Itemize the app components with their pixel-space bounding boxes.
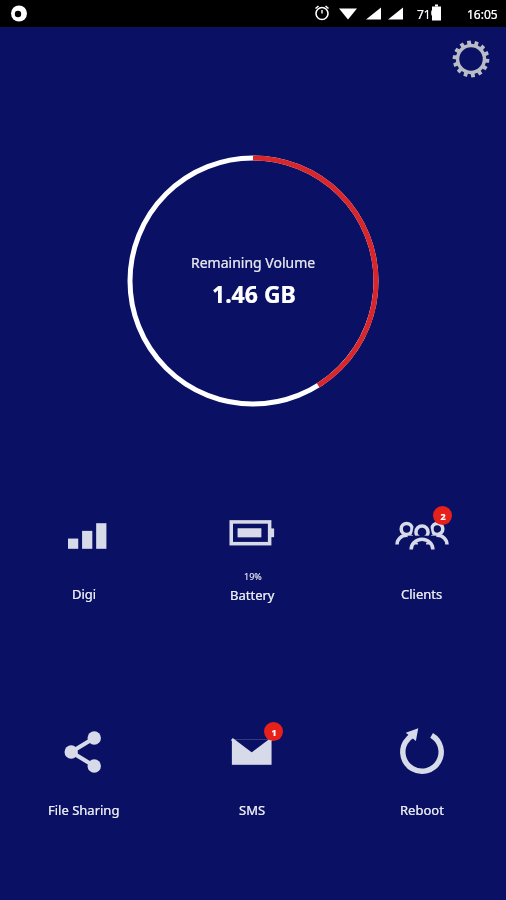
staticText: Clients bbox=[401, 585, 443, 603]
staticText: 1.46 GB bbox=[212, 278, 296, 309]
button[interactable]: 1 bbox=[168, 716, 337, 823]
button[interactable]: Digi bbox=[0, 500, 168, 607]
staticText: Digi bbox=[72, 585, 97, 603]
button[interactable]: Settings bbox=[448, 36, 494, 82]
button[interactable]: Reboot bbox=[337, 716, 506, 823]
staticText: 19% bbox=[244, 570, 262, 582]
staticText: 2 bbox=[440, 510, 446, 522]
button[interactable]: File Sharing bbox=[0, 716, 168, 823]
staticText: 1 bbox=[271, 726, 277, 738]
button[interactable]: 19% bbox=[168, 500, 337, 608]
staticText: 71% bbox=[417, 6, 441, 22]
staticText: File Sharing bbox=[48, 801, 120, 819]
button[interactable]: 2 bbox=[337, 500, 506, 607]
staticText: SMS bbox=[239, 801, 266, 819]
staticText: 16:05 bbox=[467, 6, 498, 22]
staticText: Reboot bbox=[400, 801, 444, 819]
staticText: Remaining Volume bbox=[191, 253, 316, 272]
staticText: Battery bbox=[230, 586, 275, 604]
